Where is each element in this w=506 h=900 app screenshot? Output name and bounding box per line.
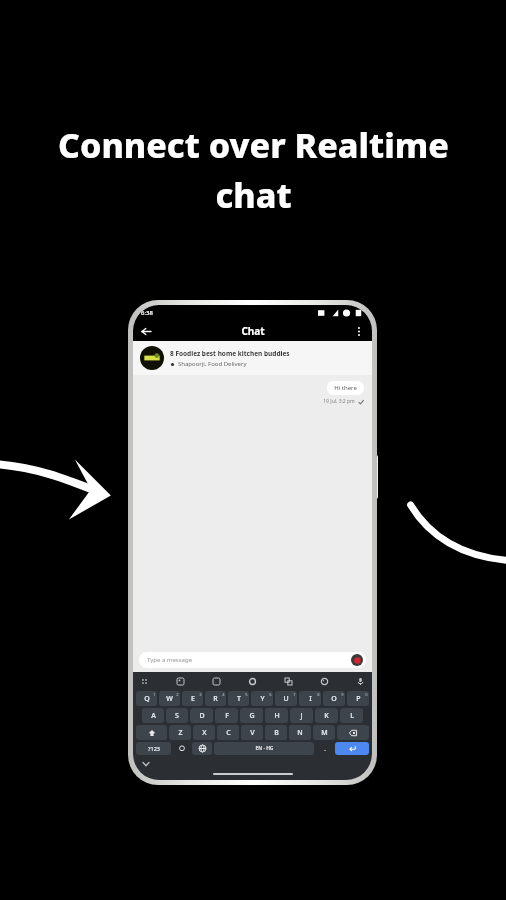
button[interactable]: Back bbox=[139, 324, 153, 338]
button[interactable]: G bbox=[240, 708, 263, 723]
staticText: I bbox=[309, 694, 312, 704]
staticText: J bbox=[300, 711, 303, 721]
button[interactable]: H bbox=[265, 708, 288, 723]
staticText: F bbox=[225, 711, 229, 721]
button[interactable]: Type a message bbox=[147, 652, 363, 668]
staticText: L bbox=[350, 711, 354, 721]
button[interactable]: N bbox=[289, 725, 311, 740]
staticText: H bbox=[274, 711, 280, 721]
button[interactable]: Change language bbox=[192, 742, 212, 755]
staticText: O bbox=[331, 694, 337, 704]
staticText: 4 bbox=[222, 692, 225, 697]
staticText: K bbox=[324, 711, 329, 721]
staticText: M bbox=[321, 728, 328, 738]
staticText: 5 bbox=[245, 692, 248, 697]
button[interactable]: K bbox=[315, 708, 338, 723]
button[interactable]: M bbox=[313, 725, 335, 740]
button[interactable]: O bbox=[323, 691, 345, 706]
staticText: Z bbox=[178, 728, 183, 738]
staticText: 6:38 bbox=[141, 309, 153, 317]
staticText: 7 bbox=[293, 692, 296, 697]
button[interactable]: Send bbox=[351, 654, 363, 666]
button[interactable]: Keyboard tool 2 bbox=[175, 676, 186, 687]
button[interactable]: Keyboard tool 5 bbox=[283, 676, 294, 687]
staticText: Hi there bbox=[334, 384, 357, 392]
button[interactable]: U bbox=[275, 691, 297, 706]
staticText: C bbox=[226, 728, 231, 738]
button[interactable]: V bbox=[241, 725, 263, 740]
button[interactable]: T bbox=[228, 691, 249, 706]
staticText: U bbox=[283, 694, 289, 704]
button[interactable]: Period bbox=[315, 742, 334, 755]
button[interactable]: Z bbox=[169, 725, 191, 740]
staticText: B bbox=[274, 728, 279, 738]
button[interactable]: Keyboard tool 6 bbox=[319, 676, 330, 687]
staticText: R bbox=[213, 694, 218, 704]
button[interactable]: Keyboard tool 1 bbox=[139, 676, 150, 687]
staticText: 19 Jul, 3:2 pm bbox=[323, 398, 355, 405]
button[interactable]: D bbox=[190, 708, 213, 723]
button[interactable]: Key bbox=[136, 725, 167, 740]
button[interactable]: A bbox=[142, 708, 164, 723]
button[interactable]: Keyboard tool 4 bbox=[247, 676, 258, 687]
button[interactable]: E bbox=[182, 691, 203, 706]
button[interactable]: Enter bbox=[335, 742, 369, 755]
staticText: Y bbox=[260, 694, 265, 704]
staticText: G bbox=[249, 711, 255, 721]
staticText: 8 bbox=[317, 692, 320, 697]
staticText: Q bbox=[144, 694, 150, 704]
button[interactable]: P bbox=[347, 691, 369, 706]
staticText: ?123 bbox=[148, 745, 160, 752]
staticText: N bbox=[297, 728, 303, 738]
button[interactable]: More options bbox=[353, 325, 365, 337]
staticText: T bbox=[237, 694, 241, 704]
staticText: E bbox=[191, 694, 195, 704]
staticText: S bbox=[175, 711, 179, 721]
button[interactable]: Q bbox=[136, 691, 157, 706]
staticText: V bbox=[250, 728, 255, 738]
staticText: Chat bbox=[241, 324, 265, 338]
button[interactable]: F bbox=[215, 708, 238, 723]
button[interactable]: 8 Foodiez best home kitchen buddies bbox=[140, 346, 365, 370]
staticText: . bbox=[324, 745, 326, 753]
button[interactable]: EN · HG bbox=[214, 742, 314, 755]
button[interactable]: L bbox=[340, 708, 363, 723]
button[interactable]: I bbox=[299, 691, 321, 706]
staticText: 2 bbox=[176, 692, 179, 697]
button[interactable]: Emoji bbox=[172, 742, 191, 755]
button[interactable]: B bbox=[265, 725, 287, 740]
button[interactable]: S bbox=[166, 708, 188, 723]
staticText: 3 bbox=[199, 692, 202, 697]
staticText: Shapoorji, Food Delivery bbox=[178, 360, 247, 368]
staticText: W bbox=[166, 694, 173, 704]
button[interactable]: Keyboard tool 7 bbox=[355, 676, 366, 687]
button[interactable]: Y bbox=[251, 691, 273, 706]
button[interactable]: C bbox=[217, 725, 239, 740]
staticText: X bbox=[202, 728, 207, 738]
staticText: 6 bbox=[269, 692, 272, 697]
button[interactable]: J bbox=[290, 708, 313, 723]
staticText: EN · HG bbox=[255, 745, 274, 752]
staticText: 8 Foodiez best home kitchen buddies bbox=[170, 349, 290, 358]
staticText: P bbox=[356, 694, 361, 704]
staticText: Type a message bbox=[147, 656, 193, 664]
button[interactable]: R bbox=[205, 691, 226, 706]
staticText: 0 bbox=[365, 692, 368, 697]
button[interactable]: Keyboard tool 3 bbox=[211, 676, 222, 687]
staticText: D bbox=[199, 711, 205, 721]
staticText: 9 bbox=[341, 692, 344, 697]
button[interactable]: X bbox=[193, 725, 215, 740]
button[interactable]: Key bbox=[337, 725, 369, 740]
staticText: Connect over Realtime bbox=[58, 122, 449, 168]
staticText: 1 bbox=[153, 692, 156, 697]
button[interactable]: W bbox=[159, 691, 180, 706]
staticText: chat bbox=[215, 172, 292, 218]
button[interactable]: ?123 bbox=[136, 742, 171, 755]
staticText: A bbox=[151, 711, 156, 721]
